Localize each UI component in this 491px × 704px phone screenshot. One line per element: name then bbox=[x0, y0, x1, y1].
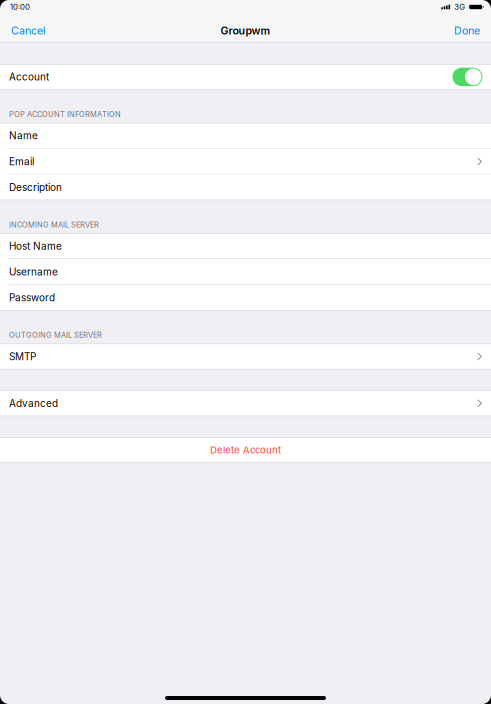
button[interactable]: Name bbox=[0, 123, 491, 149]
staticText: Cancel bbox=[11, 24, 46, 37]
staticText: POP ACCOUNT INFORMATION bbox=[9, 110, 121, 119]
staticText: Name bbox=[9, 130, 38, 142]
staticText: Done bbox=[454, 24, 480, 37]
button[interactable]: Email bbox=[0, 149, 491, 174]
button[interactable]: Account bbox=[0, 64, 491, 90]
button[interactable]: Password bbox=[0, 285, 491, 311]
staticText: INCOMING MAIL SERVER bbox=[9, 220, 99, 229]
button[interactable]: Cancel bbox=[0, 18, 59, 43]
button[interactable]: SMTP bbox=[0, 344, 491, 369]
button[interactable]: Delete Account bbox=[0, 437, 491, 463]
staticText: Email bbox=[9, 155, 34, 168]
staticText: Host Name bbox=[9, 240, 62, 252]
staticText: Groupwm bbox=[220, 24, 270, 37]
staticText: SMTP bbox=[9, 350, 36, 363]
staticText: Delete Account bbox=[210, 444, 281, 456]
button[interactable]: Description bbox=[0, 174, 491, 200]
button[interactable]: Username bbox=[0, 259, 491, 285]
staticText: 10:00 bbox=[10, 2, 30, 12]
staticText: OUTGOING MAIL SERVER bbox=[9, 331, 102, 340]
button[interactable]: Done bbox=[441, 18, 491, 43]
staticText: Username bbox=[9, 266, 58, 278]
staticText: Password bbox=[9, 292, 55, 304]
staticText: Advanced bbox=[9, 397, 58, 409]
button[interactable]: Advanced bbox=[0, 390, 491, 416]
staticText: Description bbox=[9, 181, 62, 193]
staticText: 3G bbox=[454, 2, 465, 12]
button[interactable]: Host Name bbox=[0, 233, 491, 259]
staticText: Account bbox=[9, 71, 49, 83]
